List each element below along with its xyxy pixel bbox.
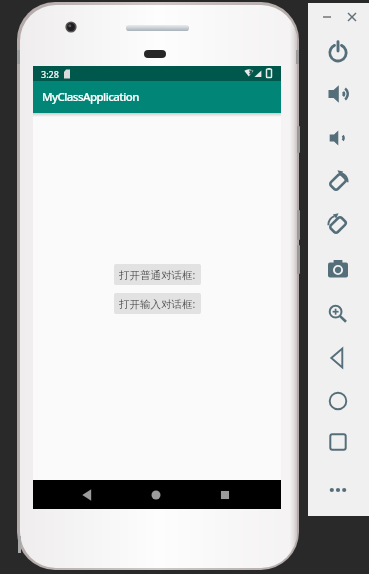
staticText: 打开输入对话框: (119, 297, 196, 311)
staticText: MyClassApplication (42, 89, 139, 105)
staticText: 3:28 (41, 68, 59, 80)
staticText: 打开普通对话框: (119, 268, 196, 282)
